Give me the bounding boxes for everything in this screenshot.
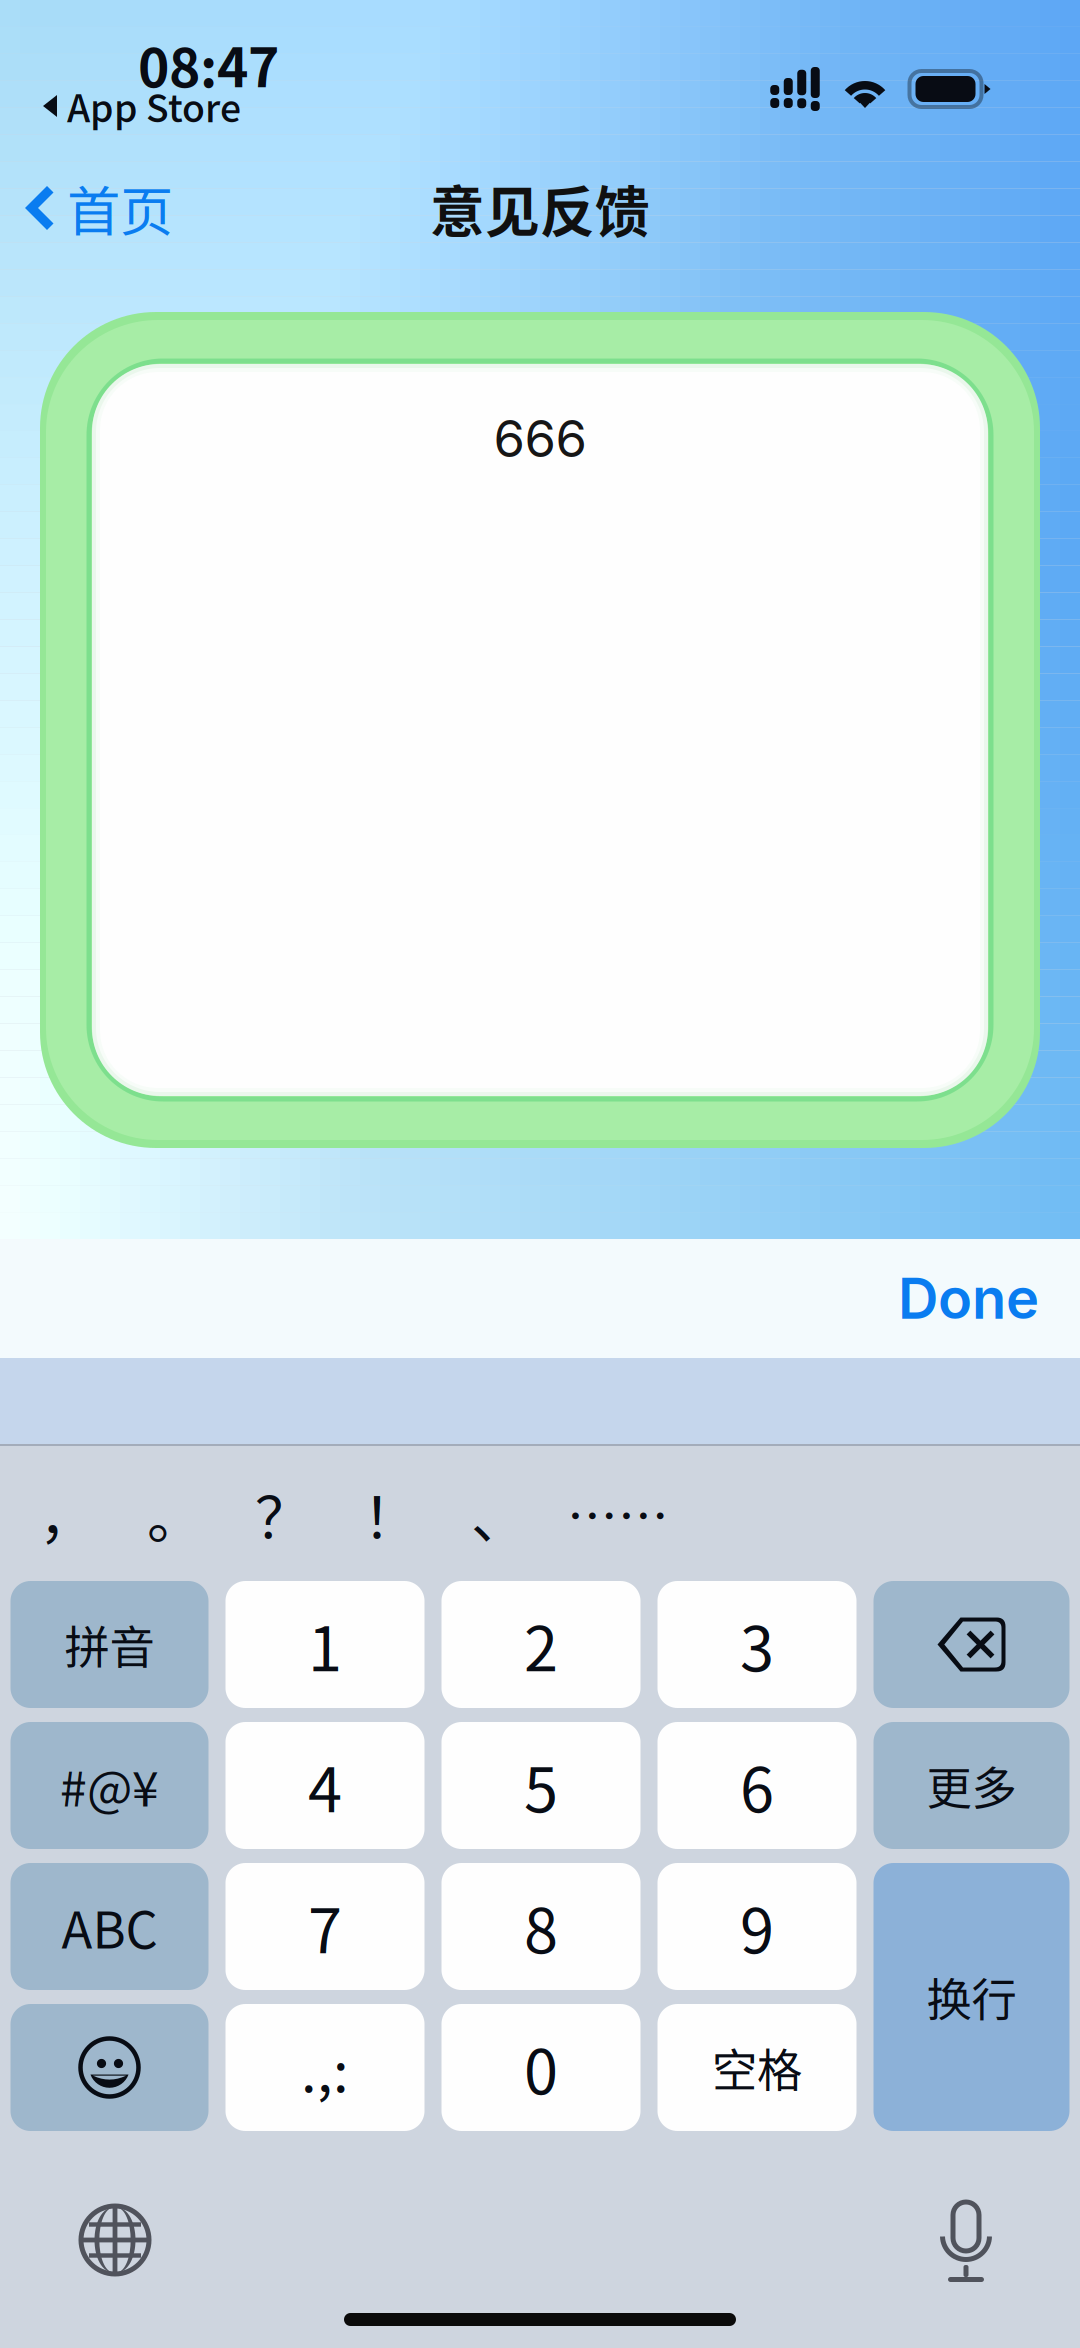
button[interactable]: 7 xyxy=(225,1863,424,1990)
staticText: ！ xyxy=(363,1473,419,1554)
staticText: 。 xyxy=(147,1473,203,1554)
staticText: 2 xyxy=(524,1600,558,1689)
button[interactable]: …… xyxy=(553,1446,683,1581)
button[interactable]: Dictation xyxy=(911,2204,1021,2285)
staticText: 08:47 xyxy=(138,25,279,103)
staticText: ？ xyxy=(255,1473,311,1554)
button[interactable]: Done xyxy=(0,1239,1080,1358)
button[interactable]: 0 xyxy=(441,2004,640,2131)
staticText: 空格 xyxy=(712,2035,802,2100)
button[interactable]: 换行 xyxy=(873,1863,1069,2131)
staticText: Done xyxy=(898,1265,1039,1332)
button[interactable]: Emoji xyxy=(10,2004,208,2131)
staticText: 1 xyxy=(308,1600,342,1689)
button[interactable]: ABC xyxy=(10,1863,208,1990)
staticText: 3 xyxy=(740,1600,774,1689)
button[interactable]: 9 xyxy=(657,1863,856,1990)
button[interactable]: Switch keyboard xyxy=(60,2204,170,2288)
staticText: 6 xyxy=(740,1741,774,1830)
staticText: …… xyxy=(567,1477,669,1550)
button[interactable]: 8 xyxy=(441,1863,640,1990)
button[interactable]: 首页 xyxy=(0,155,197,261)
staticText: 666 xyxy=(493,408,586,469)
staticText: 8 xyxy=(524,1882,558,1971)
button[interactable]: 。 xyxy=(121,1446,229,1581)
button[interactable]: 拼音 xyxy=(10,1581,208,1708)
staticText: ABC xyxy=(61,1890,157,1963)
staticText: App Store xyxy=(67,79,241,133)
staticText: 、 xyxy=(471,1473,527,1554)
button[interactable]: 5 xyxy=(441,1722,640,1849)
staticText: 首页 xyxy=(67,169,173,247)
staticText: 0 xyxy=(524,2023,558,2112)
button[interactable]: Delete xyxy=(873,1581,1069,1708)
button[interactable]: 、 xyxy=(445,1446,553,1581)
staticText: 5 xyxy=(524,1741,558,1830)
staticText: 意见反馈 xyxy=(430,168,650,248)
button[interactable]: 更多 xyxy=(873,1722,1069,1849)
staticText: 7 xyxy=(308,1882,342,1971)
button[interactable]: .,: xyxy=(225,2004,424,2131)
staticText: .,: xyxy=(301,2027,349,2108)
button[interactable]: 6 xyxy=(657,1722,856,1849)
button[interactable]: 4 xyxy=(225,1722,424,1849)
staticText: 4 xyxy=(308,1741,342,1830)
staticText: 拼音 xyxy=(64,1612,154,1677)
button[interactable]: ， xyxy=(13,1446,121,1581)
button[interactable]: 2 xyxy=(441,1581,640,1708)
staticText: 换行 xyxy=(926,1964,1016,2030)
button[interactable]: ！ xyxy=(337,1446,445,1581)
button[interactable]: 3 xyxy=(657,1581,856,1708)
button[interactable]: #@¥ xyxy=(10,1722,208,1849)
button[interactable]: 空格 xyxy=(657,2004,856,2131)
button[interactable]: ？ xyxy=(229,1446,337,1581)
staticText: 9 xyxy=(740,1882,774,1971)
staticText: ， xyxy=(39,1473,95,1554)
button[interactable]: 1 xyxy=(225,1581,424,1708)
staticText: #@¥ xyxy=(60,1751,159,1820)
staticText: 更多 xyxy=(926,1753,1016,1818)
